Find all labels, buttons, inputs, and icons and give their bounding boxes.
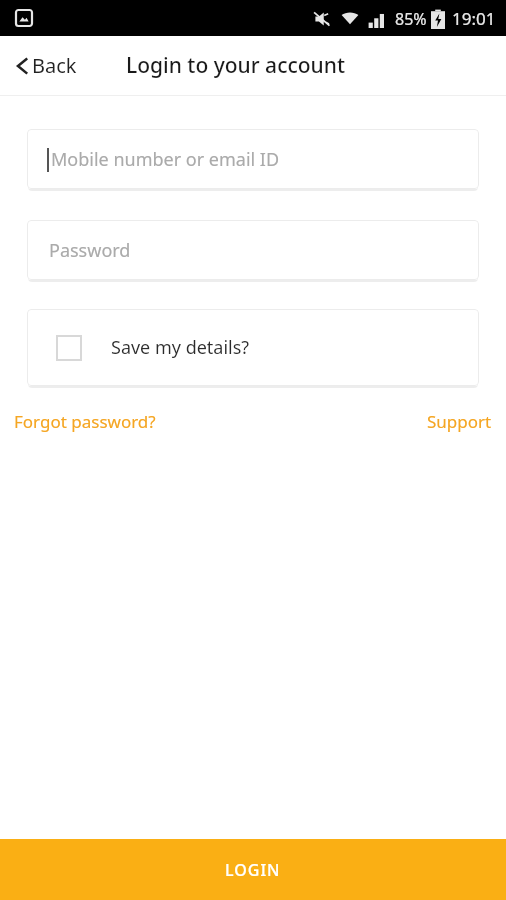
button[interactable]: Forgot password? bbox=[14, 406, 156, 437]
staticText: 85% bbox=[395, 8, 427, 30]
button[interactable]: Password bbox=[27, 220, 479, 280]
staticText: Password bbox=[49, 238, 131, 263]
other: Screenshot bbox=[14, 8, 34, 28]
button[interactable]: Support bbox=[427, 406, 492, 437]
button[interactable]: Mobile number or email ID bbox=[27, 129, 479, 189]
button[interactable]: Back bbox=[14, 52, 77, 79]
staticText: Login to your account bbox=[126, 51, 345, 80]
staticText: LOGIN bbox=[225, 859, 281, 881]
staticText: Mobile number or email ID bbox=[51, 147, 280, 172]
staticText: Support bbox=[427, 410, 492, 433]
staticText: Forgot password? bbox=[14, 410, 156, 433]
button[interactable]: Save my details? bbox=[27, 309, 479, 386]
staticText: Back bbox=[32, 52, 77, 79]
button[interactable]: LOGIN bbox=[0, 839, 506, 900]
staticText: Save my details? bbox=[111, 335, 250, 360]
staticText: 19:01 bbox=[452, 7, 496, 30]
